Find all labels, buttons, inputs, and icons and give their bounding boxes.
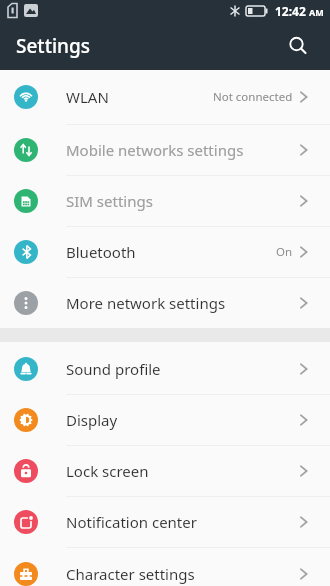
staticText: Lock screen <box>66 461 149 481</box>
staticText: Sound profile <box>66 359 161 379</box>
button[interactable]: Display <box>0 395 330 445</box>
staticText: On <box>276 244 293 260</box>
staticText: Settings <box>16 33 90 59</box>
button[interactable]: Mobile networks settings <box>0 125 330 175</box>
button[interactable]: Character settings <box>0 548 330 586</box>
button[interactable]: Lock screen <box>0 446 330 496</box>
staticText: 12:42 AM <box>275 3 324 19</box>
staticText: Character settings <box>66 564 195 584</box>
staticText: Bluetooth <box>66 242 136 262</box>
staticText: Display <box>66 410 118 430</box>
button[interactable]: More network settings <box>0 278 330 328</box>
staticText: WLAN <box>66 87 109 107</box>
button[interactable]: Bluetooth <box>0 227 330 277</box>
button[interactable]: WLAN <box>0 70 330 124</box>
staticText: Mobile networks settings <box>66 140 244 160</box>
button[interactable] <box>282 30 314 62</box>
staticText: More network settings <box>66 293 226 313</box>
staticText: SIM settings <box>66 191 153 211</box>
staticText: Notification center <box>66 512 197 532</box>
staticText: Not connected <box>213 89 293 105</box>
button[interactable]: SIM settings <box>0 176 330 226</box>
button[interactable]: Sound profile <box>0 344 330 394</box>
button[interactable]: Notification center <box>0 497 330 547</box>
